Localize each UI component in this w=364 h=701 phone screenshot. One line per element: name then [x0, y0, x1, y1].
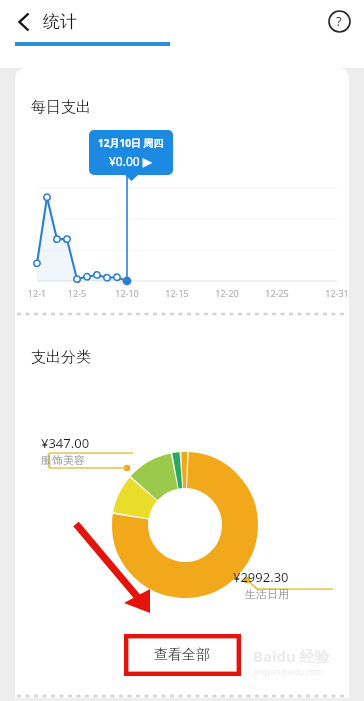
button[interactable]: 查看全部	[127, 638, 237, 672]
staticText: 12-31	[319, 287, 349, 299]
staticText: 12-1	[19, 287, 55, 299]
staticText: 统计	[43, 11, 77, 32]
staticText: ¥0.00 ▶	[109, 153, 153, 169]
staticText: 查看全部	[154, 646, 210, 664]
staticText: Baidu 经验	[253, 646, 330, 666]
staticText: 每日支出	[31, 98, 91, 117]
staticText: jingyan.baidu.com	[253, 666, 323, 677]
staticText: ¥347.00	[41, 434, 90, 452]
staticText: 12月10日 周四	[98, 136, 164, 150]
staticText: 12-25	[259, 287, 295, 299]
staticText: ¥2992.30	[233, 568, 289, 586]
staticText: 生活日用	[245, 587, 289, 601]
staticText: 12-5	[59, 287, 95, 299]
staticText: 支出分类	[31, 348, 91, 367]
button[interactable]: 12月10日 周四	[89, 130, 173, 175]
staticText: 12-20	[209, 287, 245, 299]
button[interactable]: 帮助	[322, 4, 356, 38]
button[interactable]: 返回	[6, 4, 42, 40]
staticText: 服饰美容	[41, 453, 85, 467]
staticText: 12-15	[159, 287, 195, 299]
staticText: ?	[336, 12, 342, 30]
staticText: 12-10	[109, 287, 145, 299]
